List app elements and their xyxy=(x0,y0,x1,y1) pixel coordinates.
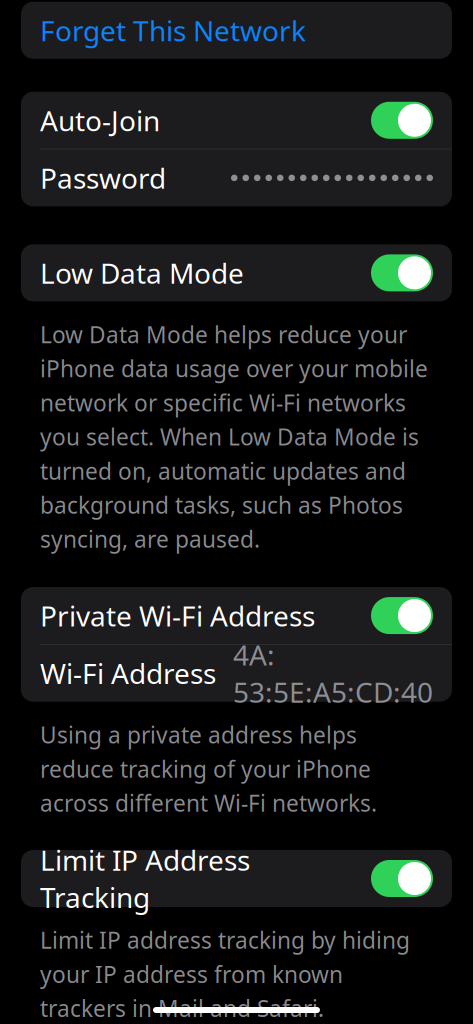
staticText: Low Data Mode helps reduce your iPhone d… xyxy=(40,319,428,554)
staticText: Wi-Fi Address xyxy=(40,655,216,692)
button[interactable]: Password xyxy=(21,149,452,206)
button[interactable]: Auto-Join xyxy=(21,92,452,149)
staticText: 4A:53:5E:A5:CD:40 xyxy=(233,636,433,710)
staticText: Using a private address helps reduce tra… xyxy=(40,720,377,818)
button[interactable]: Private Wi-Fi Address xyxy=(21,587,452,644)
staticText: Low Data Mode xyxy=(40,254,244,291)
button[interactable]: Wi-Fi Address xyxy=(21,645,452,702)
staticText: Auto-Join xyxy=(40,102,160,139)
staticText: Forget This Network xyxy=(40,12,306,49)
staticText: Private Wi-Fi Address xyxy=(40,597,315,634)
staticText: Limit IP address tracking by hiding your… xyxy=(40,925,410,1023)
button[interactable]: Forget This Network xyxy=(21,2,452,59)
staticText: Limit IP Address Tracking xyxy=(40,841,250,916)
button[interactable]: Low Data Mode xyxy=(21,244,452,301)
button[interactable]: Limit IP Address Tracking xyxy=(21,850,452,907)
staticText: Password xyxy=(40,159,166,196)
